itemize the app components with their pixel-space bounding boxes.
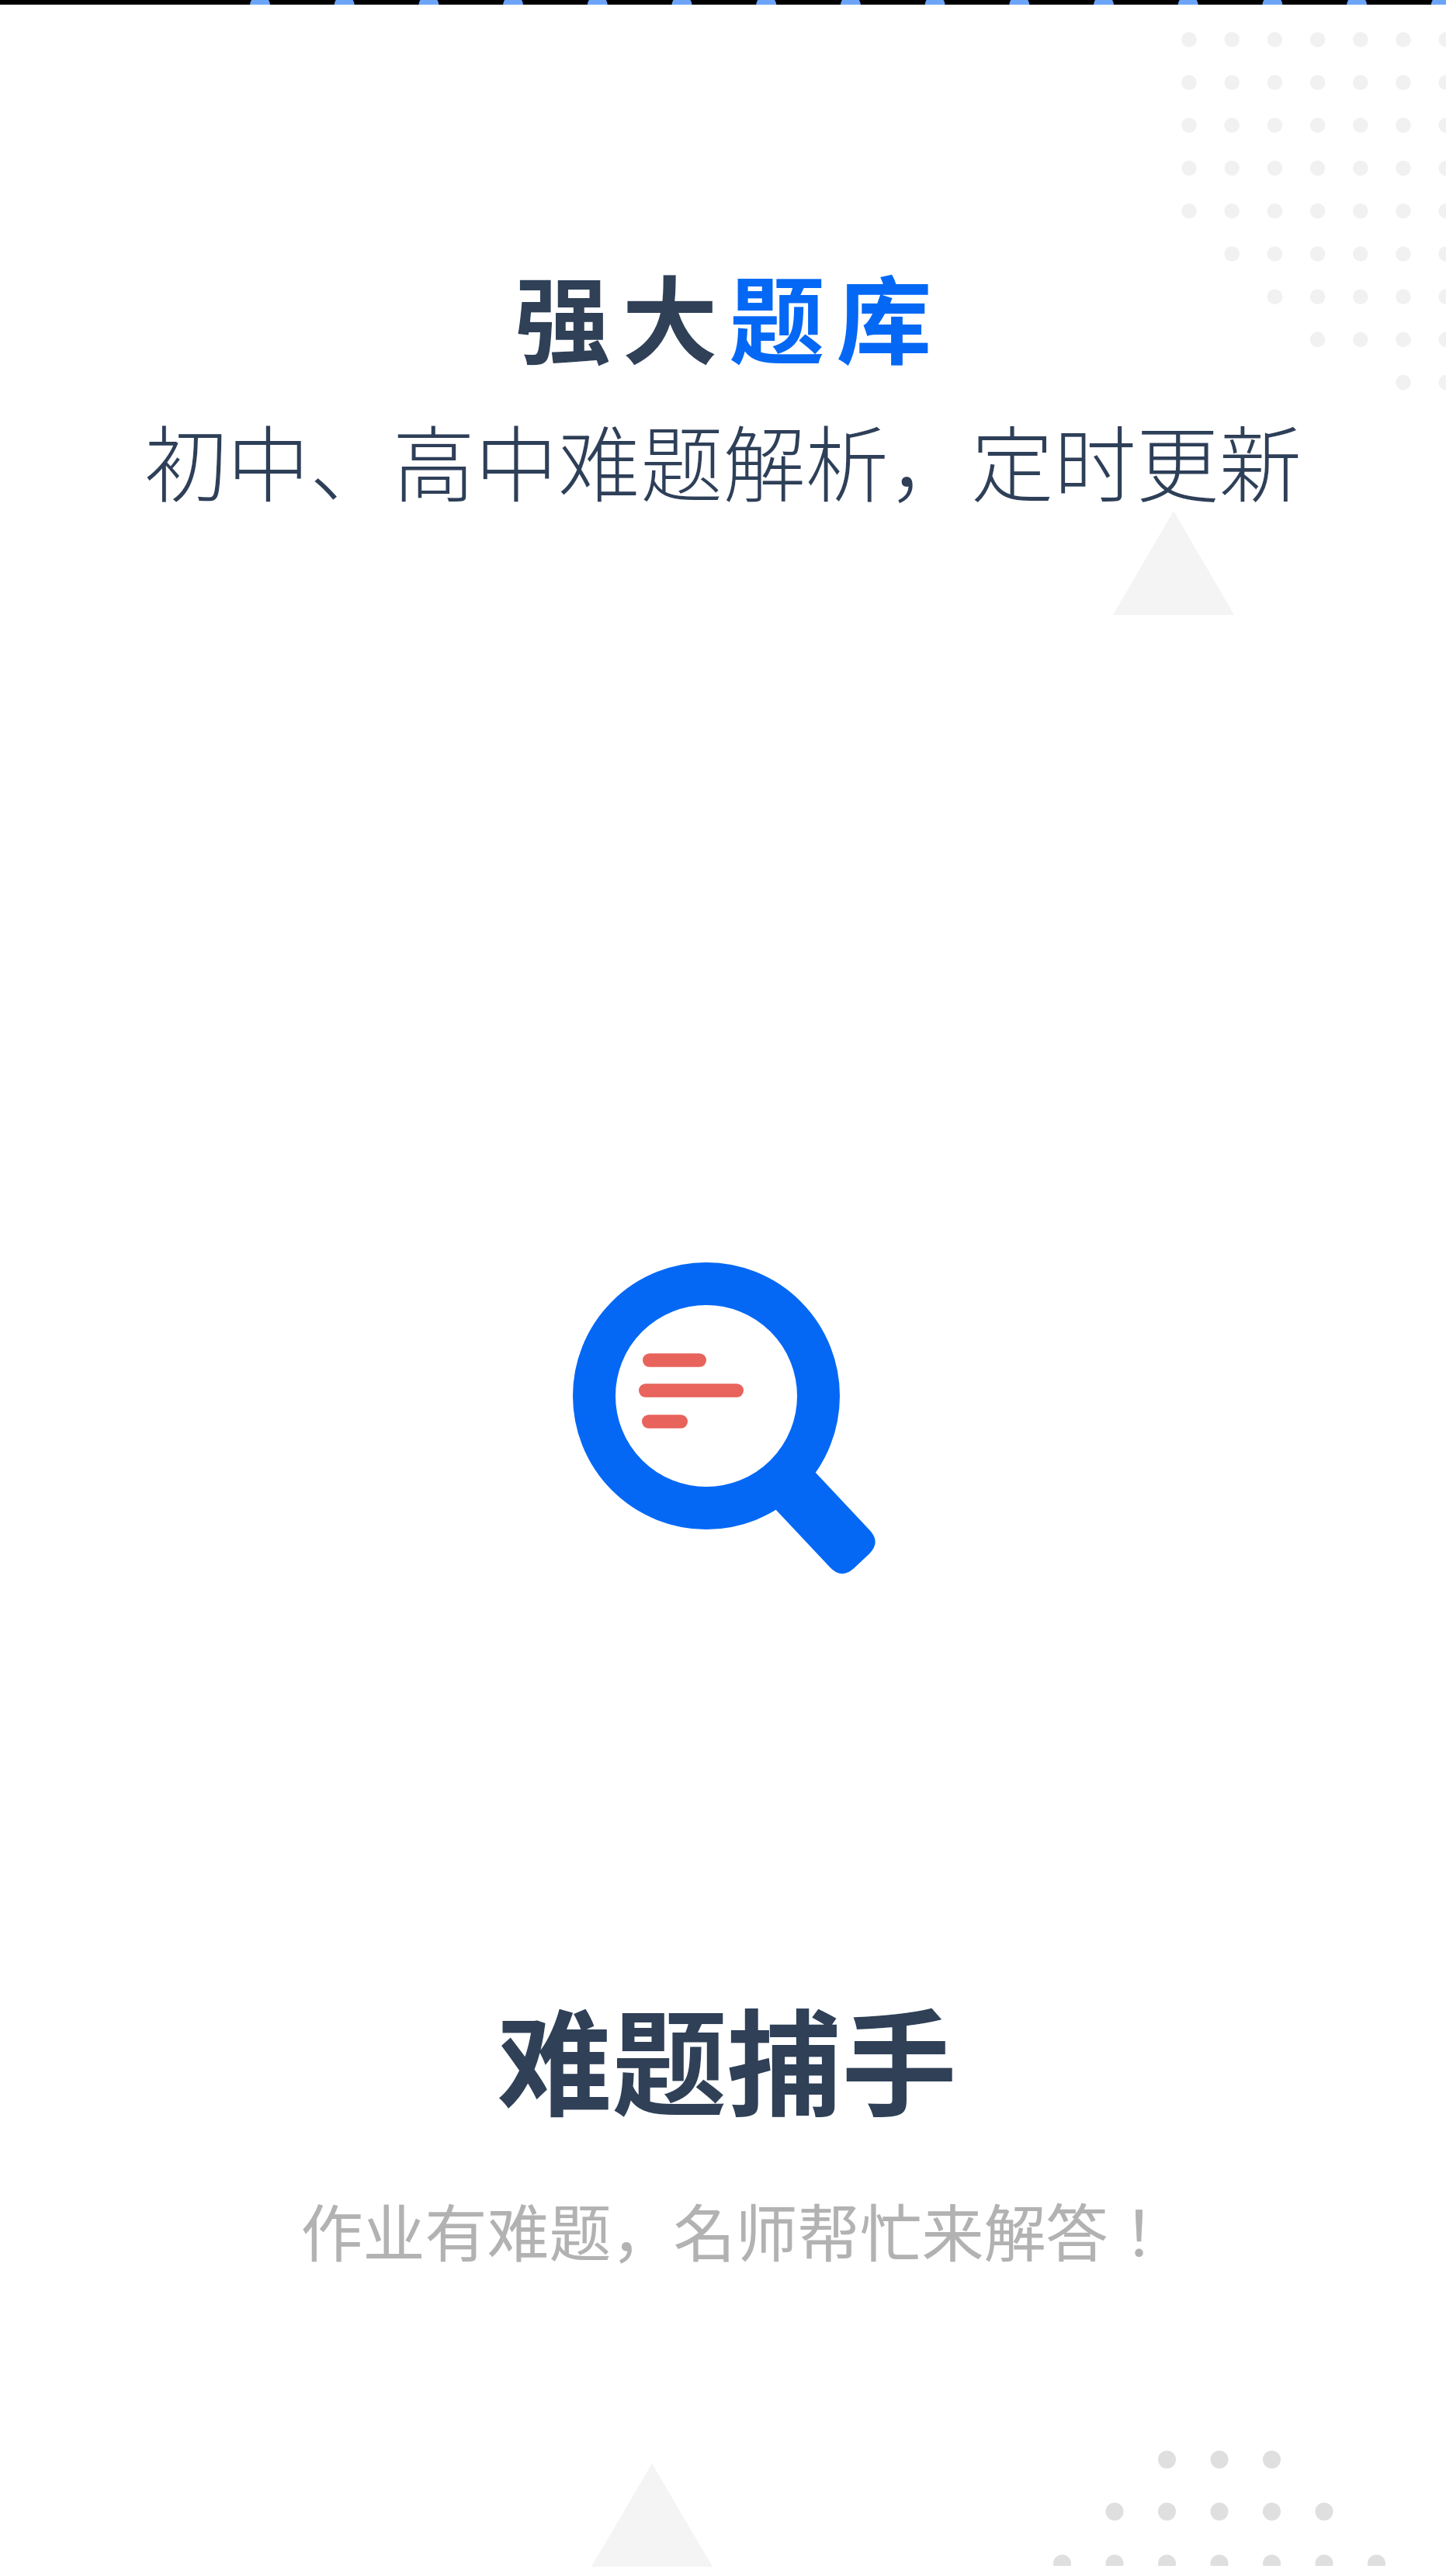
button[interactable]: 页面指示器	[0, 0, 1446, 5]
staticText: 强大题库	[6, 245, 1446, 384]
staticText: 难题捕手	[4, 1973, 1446, 2139]
button[interactable]: 搜索题目	[573, 1262, 883, 1581]
staticText: 作业有难题，名师帮忙来解答！	[12, 2184, 1446, 2274]
staticText: 初中、高中难题解析，定时更新	[0, 399, 1446, 519]
